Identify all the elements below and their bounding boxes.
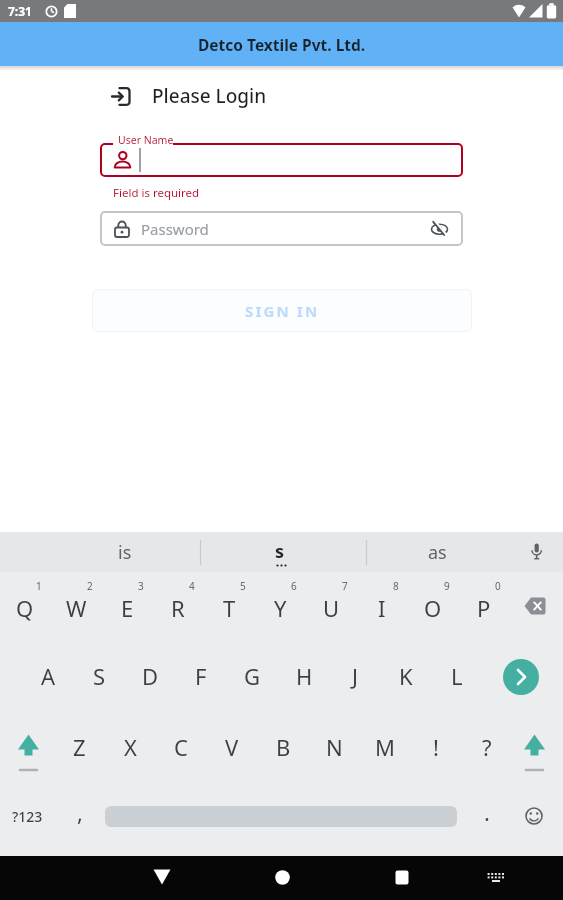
button[interactable]: [498, 654, 544, 700]
button[interactable]: Q: [2, 581, 48, 635]
staticText: !: [433, 732, 439, 762]
staticText: 2: [87, 579, 93, 593]
staticText: s: [275, 539, 285, 564]
button[interactable]: ?: [464, 720, 510, 774]
staticText: ?123: [12, 807, 43, 826]
button[interactable]: H: [281, 649, 327, 703]
staticText: 8: [393, 579, 399, 593]
staticText: M: [375, 732, 395, 762]
button[interactable]: [100, 143, 463, 177]
staticText: C: [174, 732, 188, 762]
staticText: ,: [77, 797, 83, 827]
button[interactable]: [92, 289, 472, 332]
button[interactable]: [380, 858, 424, 898]
button[interactable]: s: [210, 531, 350, 571]
staticText: 3: [138, 579, 144, 593]
button[interactable]: ,: [60, 787, 100, 837]
button[interactable]: .: [467, 787, 507, 837]
staticText: 7:31: [8, 3, 32, 19]
button[interactable]: K: [383, 649, 429, 703]
button[interactable]: G: [229, 649, 275, 703]
button[interactable]: C: [158, 720, 204, 774]
button[interactable]: U: [308, 581, 354, 635]
button[interactable]: [0, 22, 563, 66]
staticText: A: [41, 661, 56, 691]
staticText: N: [326, 732, 343, 762]
staticText: H: [296, 661, 313, 691]
button[interactable]: Y: [257, 581, 303, 635]
staticText: X: [124, 732, 137, 762]
button[interactable]: [512, 794, 557, 839]
button[interactable]: [140, 858, 184, 898]
button[interactable]: F: [178, 649, 224, 703]
staticText: 1: [36, 579, 42, 593]
staticText: SIGN IN: [245, 301, 320, 321]
button[interactable]: N: [311, 720, 357, 774]
staticText: V: [225, 732, 239, 762]
button[interactable]: A: [25, 649, 71, 703]
staticText: R: [171, 593, 185, 623]
staticText: J: [352, 661, 359, 691]
staticText: I: [378, 593, 386, 623]
button[interactable]: B: [260, 720, 306, 774]
button[interactable]: [261, 858, 305, 898]
staticText: .: [484, 797, 490, 827]
staticText: E: [121, 593, 134, 623]
button[interactable]: L: [434, 649, 480, 703]
staticText: 0: [495, 579, 501, 593]
staticText: Detco Textile Pvt. Ltd.: [198, 34, 366, 55]
staticText: ?: [482, 732, 492, 762]
staticText: Please Login: [152, 83, 267, 109]
button[interactable]: X: [107, 720, 153, 774]
button[interactable]: P: [461, 581, 507, 635]
button[interactable]: O: [410, 581, 456, 635]
button[interactable]: D: [127, 649, 173, 703]
staticText: S: [93, 661, 106, 691]
button[interactable]: W: [53, 581, 99, 635]
button[interactable]: ?123: [2, 791, 52, 841]
staticText: F: [195, 661, 207, 691]
button[interactable]: T: [206, 581, 252, 635]
button[interactable]: [478, 860, 514, 896]
staticText: is: [118, 540, 132, 565]
staticText: L: [451, 661, 463, 691]
staticText: P: [477, 593, 491, 623]
button[interactable]: Z: [56, 720, 102, 774]
staticText: 7: [342, 579, 348, 593]
staticText: Q: [16, 593, 34, 623]
button[interactable]: [512, 722, 557, 772]
staticText: as: [428, 540, 447, 565]
button[interactable]: M: [362, 720, 408, 774]
staticText: Field is required: [113, 185, 200, 201]
staticText: U: [323, 593, 340, 623]
button[interactable]: [516, 536, 556, 569]
staticText: User Name: [118, 133, 174, 147]
staticText: Z: [73, 732, 86, 762]
button[interactable]: !: [413, 720, 459, 774]
staticText: Y: [274, 593, 287, 623]
staticText: K: [399, 661, 413, 691]
staticText: Password: [141, 219, 209, 239]
staticText: O: [424, 593, 442, 623]
button[interactable]: I: [359, 581, 405, 635]
button[interactable]: as: [372, 532, 502, 572]
staticText: 9: [444, 579, 450, 593]
button[interactable]: V: [209, 720, 255, 774]
staticText: D: [142, 661, 159, 691]
staticText: 6: [291, 579, 297, 593]
button[interactable]: J: [332, 649, 378, 703]
button[interactable]: S: [76, 649, 122, 703]
button[interactable]: is: [55, 532, 195, 572]
button[interactable]: [6, 722, 51, 772]
staticText: G: [244, 661, 261, 691]
staticText: B: [276, 732, 291, 762]
button[interactable]: E: [104, 581, 150, 635]
button[interactable]: [512, 582, 562, 632]
button[interactable]: R: [155, 581, 201, 635]
staticText: 4: [189, 579, 195, 593]
staticText: T: [223, 593, 236, 623]
button[interactable]: [100, 211, 463, 246]
staticText: 5: [240, 579, 246, 593]
staticText: W: [66, 593, 87, 623]
